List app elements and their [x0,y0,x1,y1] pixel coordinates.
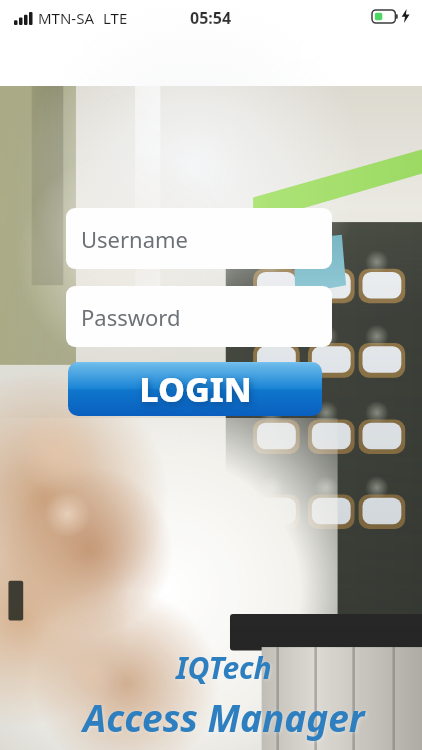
staticText: LTE [103,8,128,28]
staticText: Password [81,302,181,332]
button[interactable]: Username [66,208,332,269]
staticText: 05:54 [190,7,232,29]
button[interactable]: Password [66,286,332,347]
staticText: Access Manager [83,692,365,742]
staticText: MTN-SA [38,8,94,28]
staticText: LOGIN [139,366,252,412]
staticText: Username [81,224,189,254]
button[interactable]: LOGIN [68,362,322,416]
staticText: IQTech [176,647,272,688]
